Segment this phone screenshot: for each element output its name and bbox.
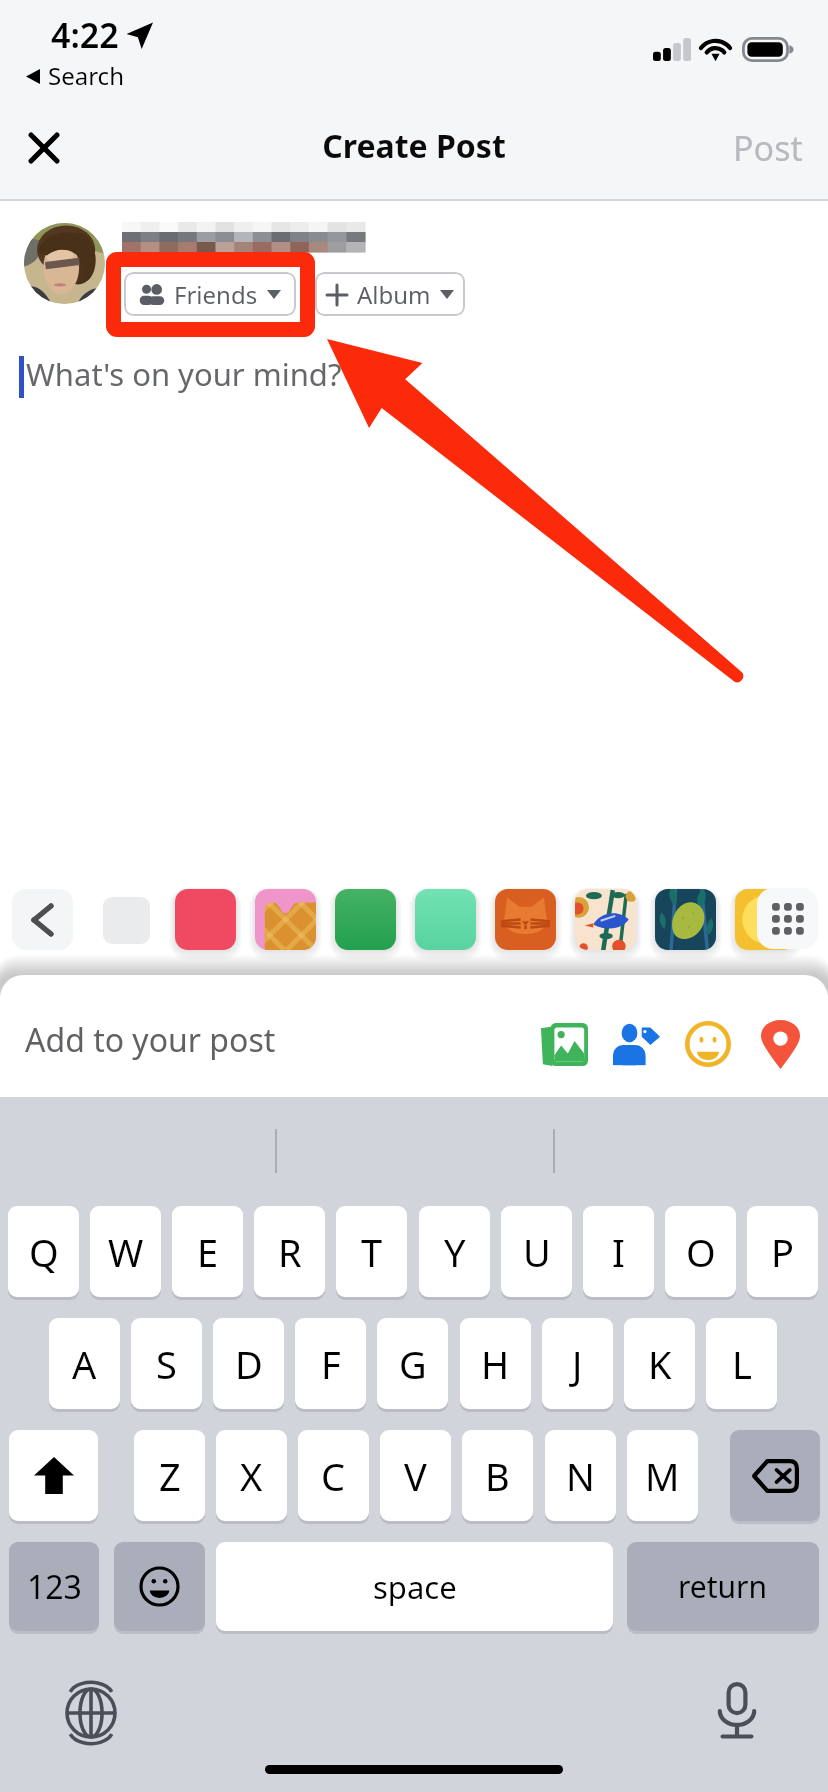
staticText: Friends [174,278,258,311]
staticText: L [732,1338,752,1390]
button[interactable]: Close [14,118,74,178]
button[interactable]: A [49,1318,120,1409]
button[interactable]: Album [315,272,465,316]
button[interactable]: bksp [730,1430,820,1521]
staticText: R [278,1226,302,1278]
staticText: S [156,1338,177,1390]
staticText: Post [733,125,803,171]
button[interactable]: V [380,1430,451,1521]
staticText: O [686,1226,716,1278]
button[interactable]: Photo [735,889,796,950]
button[interactable]: Z [134,1430,205,1521]
button[interactable]: Photo [415,889,476,950]
staticText: 4:22 [51,12,119,58]
button[interactable]: Photo [175,889,236,950]
button[interactable]: Post [712,119,824,177]
button[interactable]: O [665,1206,736,1297]
button[interactable]: space [216,1542,613,1631]
button[interactable]: Q [8,1206,79,1297]
button[interactable]: K [624,1318,695,1409]
button[interactable]: Selected photo [92,886,160,954]
button[interactable]: Dictate [701,1675,773,1747]
button[interactable]: Back [12,889,73,950]
button[interactable]: W [90,1206,161,1297]
staticText: Search [48,59,124,92]
button[interactable]: Tag people [605,1013,667,1075]
button[interactable]: N [545,1430,616,1521]
button[interactable]: T [336,1206,407,1297]
staticText: N [566,1450,595,1502]
staticText: H [481,1338,510,1390]
staticText: F [321,1338,341,1390]
staticText: B [485,1450,510,1502]
staticText: D [235,1338,263,1390]
staticText: P [771,1226,794,1278]
staticText: Album [357,278,431,311]
button[interactable]: Photo [335,889,396,950]
button[interactable]: Photo [255,889,316,950]
staticText: return [678,1566,768,1607]
button[interactable]: D [213,1318,284,1409]
staticText: V [404,1450,427,1502]
staticText: A [72,1338,97,1390]
button[interactable]: E [172,1206,243,1297]
button[interactable]: C [298,1430,369,1521]
button[interactable]: P [747,1206,818,1297]
staticText: Z [159,1450,181,1502]
staticText: I [612,1226,625,1278]
button[interactable]: All photos [757,888,818,949]
button[interactable]: 123 [9,1542,99,1631]
button[interactable]: J [542,1318,613,1409]
staticText: space [373,1566,457,1608]
staticText: Q [29,1226,59,1278]
staticText: W [108,1226,144,1278]
button[interactable]: emoji [114,1542,205,1631]
button[interactable]: Check in [749,1013,811,1075]
staticText: Create Post [0,124,828,168]
button[interactable]: Photo [495,889,556,950]
button[interactable]: Y [419,1206,490,1297]
button[interactable]: F [295,1318,366,1409]
staticText: 123 [27,1565,82,1609]
staticText: X [240,1450,263,1502]
button[interactable]: I [583,1206,654,1297]
staticText: What's on your mind? [26,353,342,395]
button[interactable]: S [131,1318,202,1409]
button[interactable]: shift [9,1430,98,1521]
button[interactable]: Friends [124,272,296,316]
staticText: T [361,1226,383,1278]
button[interactable]: B [462,1430,533,1521]
staticText: J [572,1338,583,1390]
button[interactable]: X [216,1430,287,1521]
staticText: E [197,1226,219,1278]
button[interactable]: U [501,1206,572,1297]
button[interactable]: L [706,1318,777,1409]
staticText: M [645,1450,680,1502]
button[interactable]: M [627,1430,698,1521]
button[interactable]: R [254,1206,325,1297]
button[interactable]: Photo/video [533,1013,595,1075]
staticText: U [523,1226,551,1278]
button[interactable]: H [460,1318,531,1409]
button[interactable]: G [377,1318,448,1409]
button[interactable]: Photo [575,889,636,950]
button[interactable]: return [627,1542,819,1631]
staticText: Add to your post [25,1018,276,1062]
button[interactable]: Feeling/activity [677,1013,739,1075]
staticText: K [648,1338,672,1390]
staticText: C [321,1450,346,1502]
button[interactable]: Photo [655,889,716,950]
staticText: G [399,1338,427,1390]
button[interactable]: Change keyboard [55,1677,127,1749]
staticText: Y [444,1226,466,1278]
